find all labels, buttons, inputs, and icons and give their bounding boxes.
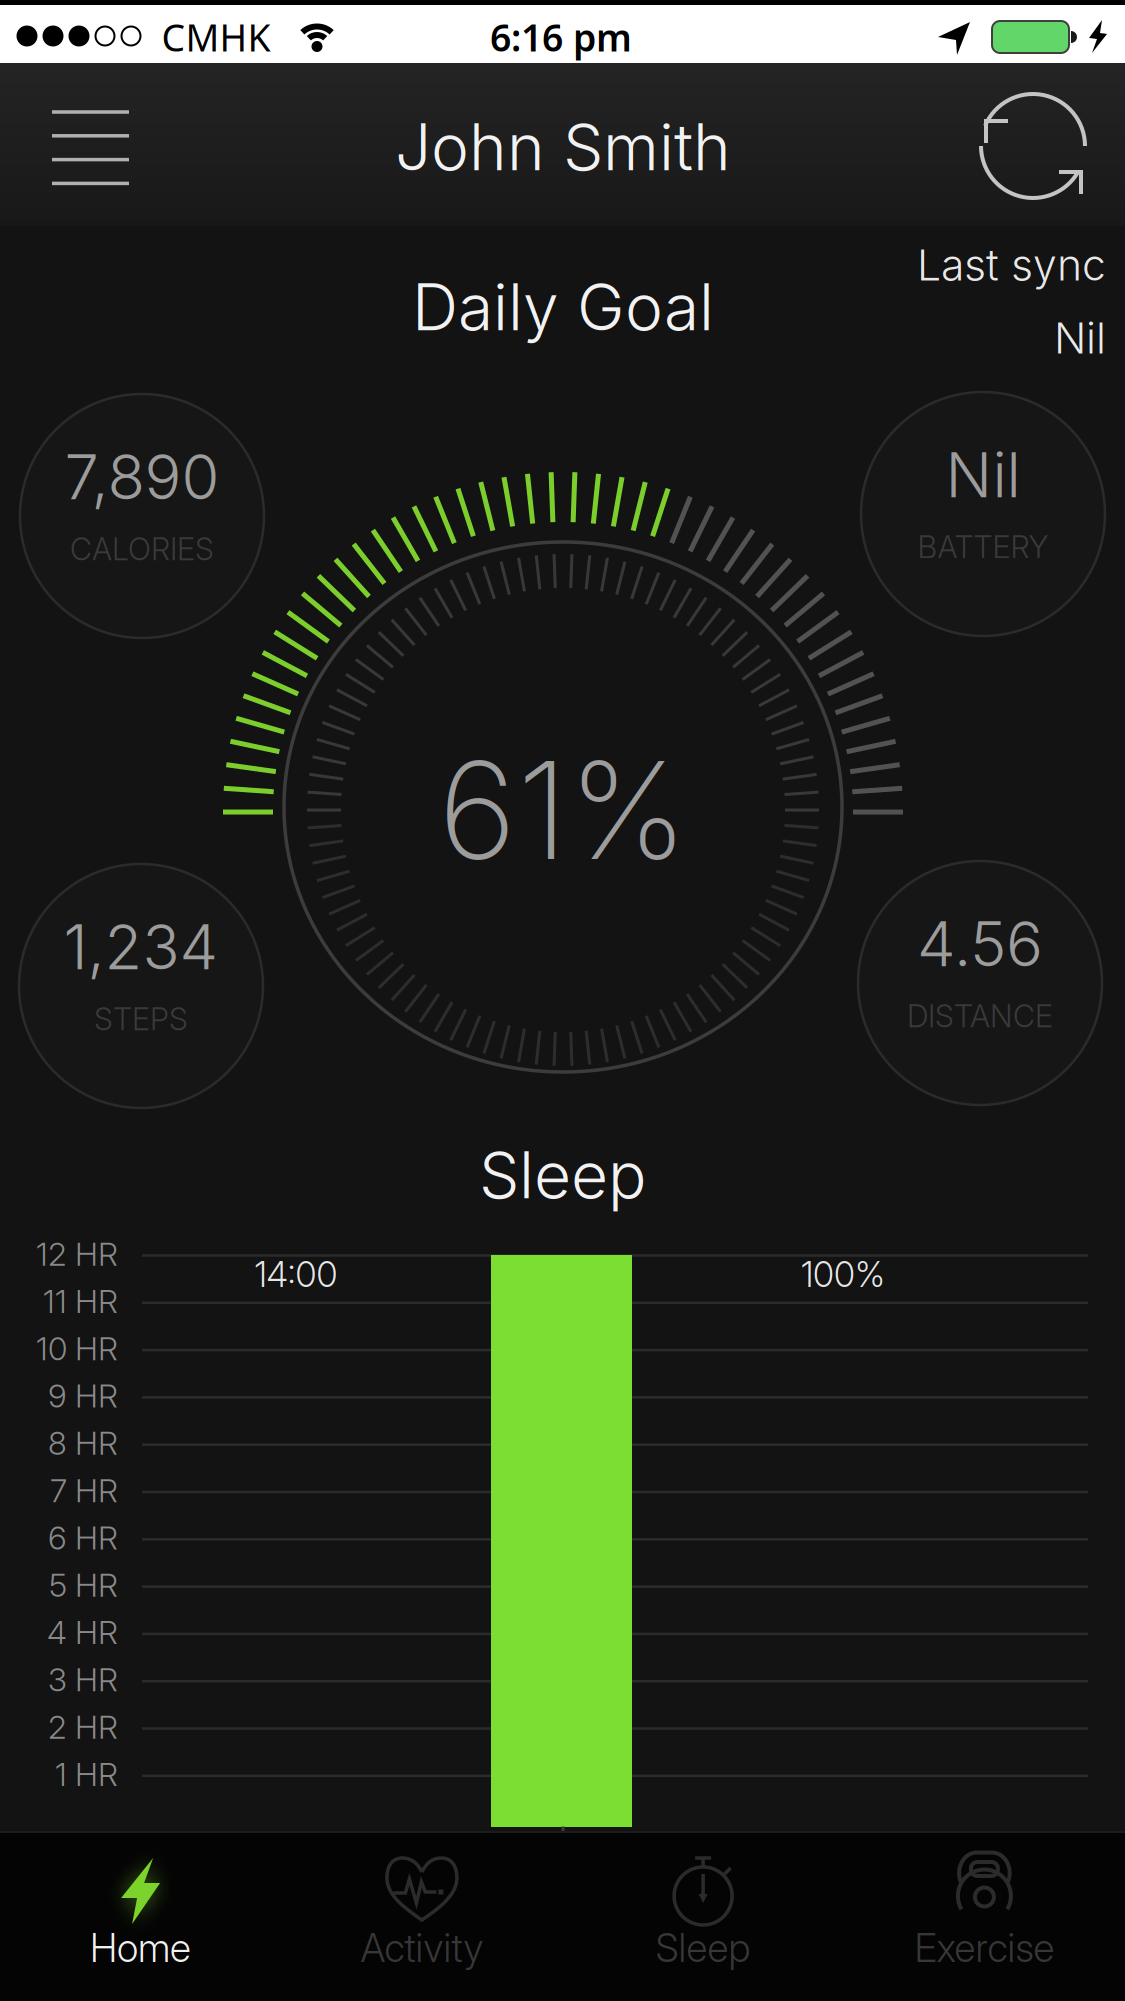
staticText: 61% xyxy=(438,728,688,891)
staticText: Nil xyxy=(1054,312,1106,364)
staticText: Daily Goal xyxy=(412,268,714,346)
button[interactable] xyxy=(30,87,150,207)
staticText: 2 HR xyxy=(48,1708,118,1746)
staticText: Home xyxy=(90,1925,191,1971)
staticText: 8 HR xyxy=(48,1424,118,1462)
staticText: DISTANCE xyxy=(907,997,1053,1034)
staticText: BATTERY xyxy=(917,528,1048,565)
staticText: Activity xyxy=(360,1925,483,1971)
button[interactable]: Exercise xyxy=(844,1832,1125,2001)
staticText: 100% xyxy=(801,1253,885,1295)
staticText: Last sync xyxy=(917,239,1106,291)
staticText: Sleep xyxy=(479,1136,647,1214)
staticText: 9 HR xyxy=(48,1376,118,1415)
staticText: 6 HR xyxy=(48,1518,118,1557)
staticText: 7,890 xyxy=(64,440,219,514)
staticText: 7 HR xyxy=(50,1471,118,1510)
staticText: CALORIES xyxy=(70,530,214,567)
staticText: 12 HR xyxy=(36,1235,118,1273)
staticText: John Smith xyxy=(395,108,731,186)
button[interactable]: Activity xyxy=(281,1832,562,2001)
staticText: 6:16 pm xyxy=(490,12,632,62)
staticText: 1,234 xyxy=(63,910,218,984)
staticText: Sleep xyxy=(656,1925,751,1971)
staticText: Nil xyxy=(945,438,1020,512)
staticText: CMHK xyxy=(161,12,270,62)
button[interactable] xyxy=(963,76,1103,216)
staticText: 11 HR xyxy=(43,1282,118,1321)
staticText: 10 HR xyxy=(36,1329,118,1368)
staticText: 1 HR xyxy=(55,1755,118,1794)
staticText: 5 HR xyxy=(49,1566,118,1604)
staticText: 4 HR xyxy=(47,1613,118,1652)
staticText: 3 HR xyxy=(48,1660,118,1699)
staticText: STEPS xyxy=(94,1000,188,1037)
staticText: 4.56 xyxy=(917,907,1043,981)
staticText: Exercise xyxy=(914,1925,1054,1971)
button[interactable]: Sleep xyxy=(563,1832,844,2001)
staticText: 14:00 xyxy=(254,1253,337,1295)
button[interactable]: Home xyxy=(0,1832,281,2001)
